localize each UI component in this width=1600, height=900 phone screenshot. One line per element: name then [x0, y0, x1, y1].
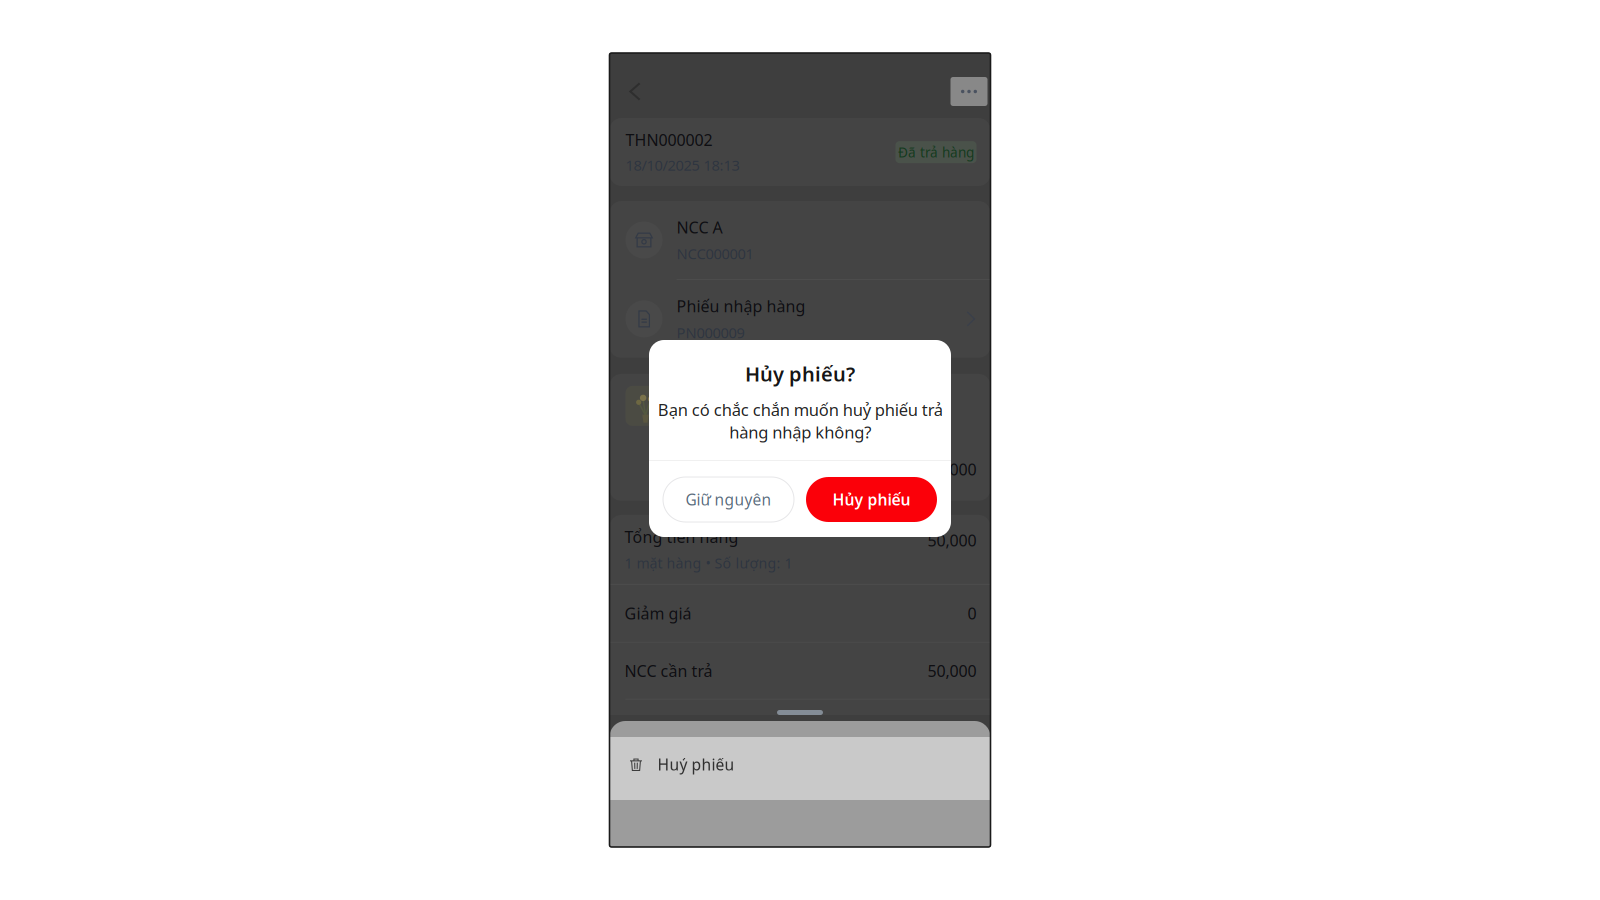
button[interactable]: Phiếu nhập hàng [609, 280, 990, 358]
button[interactable]: Giữ nguyên [663, 477, 794, 522]
staticText: Ghi chú [625, 717, 683, 738]
staticText: Giữ nguyên [685, 489, 771, 510]
staticText: Hủy phiếu? [745, 360, 855, 387]
staticText: 50,000 [927, 530, 976, 551]
staticText: 18/10/2025 18:13 [625, 155, 739, 175]
staticText: Huỷ phiếu [657, 754, 734, 775]
staticText: PN000009 [676, 323, 744, 342]
staticText: Giảm giá [624, 603, 691, 624]
staticText: Đã trả hàng [898, 143, 974, 161]
staticText: SP000001 [677, 409, 742, 428]
staticText: 50,000 [927, 660, 976, 681]
button[interactable]: More options [950, 77, 987, 106]
staticText: Phiếu nhập hàng [676, 295, 805, 317]
staticText: Tổng tiền hàng [624, 526, 738, 547]
button[interactable]: Huỷ phiếu [609, 737, 990, 800]
staticText: NCC000001 [676, 244, 753, 263]
staticText: 1 mặt hàng • Số lượng: 1 [624, 553, 792, 573]
staticText: NCC cần trả [624, 660, 712, 681]
staticText: NCC A [676, 217, 722, 238]
staticText: 50,000 [927, 459, 976, 480]
staticText: Hủy phiếu [832, 489, 910, 510]
staticText: Hoa loại [677, 384, 739, 405]
staticText: THN000002 [625, 129, 712, 150]
staticText: 0 [967, 603, 976, 624]
staticText: Bạn có chắc chắn muốn huỷ phiếu trả hàng… [657, 398, 942, 443]
button[interactable]: Hủy phiếu [806, 477, 937, 522]
